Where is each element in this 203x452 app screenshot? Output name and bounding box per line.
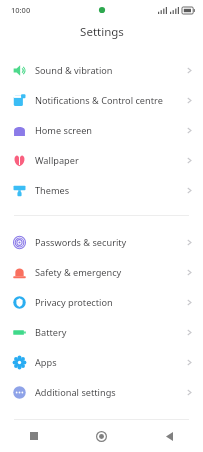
button[interactable]: Home screen bbox=[0, 115, 203, 145]
staticText: Home screen bbox=[35, 124, 92, 137]
button[interactable]: Home bbox=[67, 420, 135, 452]
staticText: Settings bbox=[80, 24, 124, 40]
staticText: Notifications & Control centre bbox=[35, 94, 163, 107]
staticText: Safety & emergency bbox=[35, 266, 122, 279]
staticText: Wallpaper bbox=[35, 154, 79, 167]
button[interactable]: Notifications & Control centre bbox=[0, 85, 203, 115]
button[interactable]: Recents bbox=[0, 420, 67, 452]
button[interactable]: Back bbox=[135, 420, 203, 452]
staticText: Passwords & security bbox=[35, 236, 127, 249]
staticText: Sound & vibration bbox=[35, 64, 113, 77]
staticText: Apps bbox=[35, 356, 57, 369]
button[interactable]: Privacy protection bbox=[0, 287, 203, 317]
staticText: Additional settings bbox=[35, 386, 116, 399]
button[interactable]: Wallpaper bbox=[0, 145, 203, 175]
button[interactable]: Sound & vibration bbox=[0, 55, 203, 85]
staticText: Privacy protection bbox=[35, 296, 113, 309]
staticText: Themes bbox=[35, 184, 70, 197]
button[interactable]: Passwords & security bbox=[0, 227, 203, 257]
staticText: 10:00 bbox=[11, 5, 31, 15]
button[interactable]: Additional settings bbox=[0, 377, 203, 407]
button[interactable]: Themes bbox=[0, 175, 203, 205]
staticText: Battery bbox=[35, 326, 67, 339]
button[interactable]: Safety & emergency bbox=[0, 257, 203, 287]
button[interactable]: Battery bbox=[0, 317, 203, 347]
button[interactable]: Apps bbox=[0, 347, 203, 377]
